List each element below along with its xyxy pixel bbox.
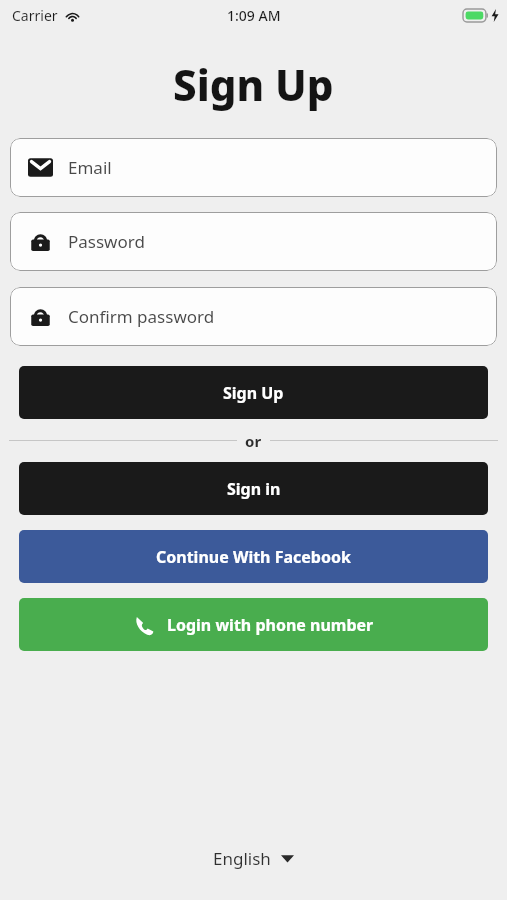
staticText: Login with phone number — [167, 614, 374, 636]
staticText: Password — [68, 230, 145, 253]
button[interactable]: English — [203, 841, 304, 876]
button[interactable]: Login with phone number — [19, 598, 488, 651]
staticText: Continue With Facebook — [156, 546, 351, 568]
other: Choose language — [281, 854, 294, 863]
staticText: Sign Up — [173, 56, 334, 113]
button[interactable]: Password — [10, 212, 497, 271]
button[interactable]: Sign Up — [19, 366, 488, 419]
staticText: or — [245, 431, 262, 449]
staticText: Confirm password — [68, 305, 215, 328]
staticText: Sign Up — [223, 382, 284, 404]
button[interactable]: Continue With Facebook — [19, 530, 488, 583]
button[interactable]: Sign in — [19, 462, 488, 515]
staticText: 1:09 AM — [227, 6, 281, 25]
staticText: Sign in — [227, 478, 281, 500]
staticText: English — [213, 847, 271, 870]
staticText: Carrier — [12, 6, 58, 25]
staticText: Email — [68, 156, 112, 179]
button[interactable]: Confirm password — [10, 287, 497, 346]
button[interactable]: Email — [10, 138, 497, 197]
